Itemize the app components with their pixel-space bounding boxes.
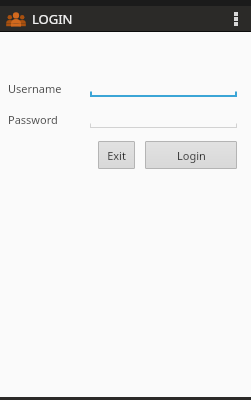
staticText: Username: [8, 81, 80, 96]
staticText: Password: [8, 112, 80, 127]
button[interactable]: Password: [90, 110, 237, 128]
button[interactable]: Exit: [98, 141, 135, 169]
button[interactable]: More options: [225, 6, 247, 32]
staticText: Login: [177, 148, 206, 163]
button[interactable]: Login: [145, 141, 237, 169]
button[interactable]: Username: [90, 79, 237, 97]
staticText: LOGIN: [32, 10, 73, 28]
staticText: Exit: [107, 148, 126, 163]
